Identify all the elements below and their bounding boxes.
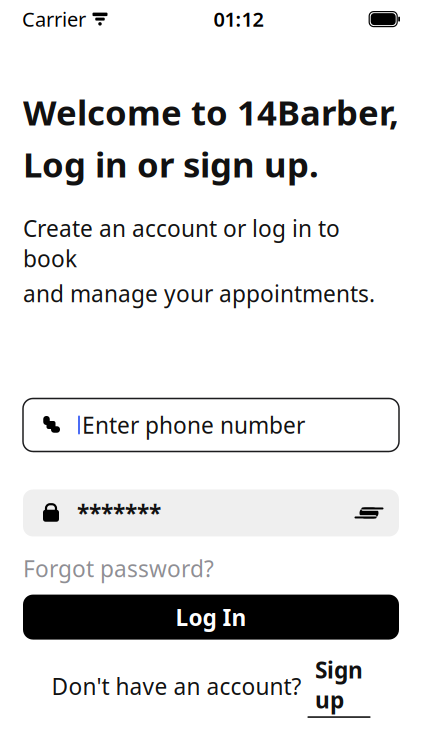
staticText: Enter phone number [82,410,305,440]
staticText: ******* [77,498,161,528]
staticText: Forgot password? [23,553,214,584]
staticText: Sign up [315,655,363,715]
staticText: Carrier [22,6,86,32]
button[interactable]: Forgot password? [23,550,399,587]
staticText: Welcome to 14Barber, [23,89,399,135]
button[interactable]: Don't have an account? [23,652,399,721]
staticText: and manage your appointments. [23,278,375,308]
staticText: Don't have an account? [51,671,307,701]
staticText: Log In [175,602,246,632]
staticText: Log in or sign up. [23,141,319,187]
button[interactable]: ******* [23,489,399,536]
staticText: 01:12 [214,6,264,32]
button[interactable]: Log In [23,595,399,640]
staticText: Create an account or log in to book [23,213,340,273]
button[interactable]: Enter phone number [23,398,399,451]
